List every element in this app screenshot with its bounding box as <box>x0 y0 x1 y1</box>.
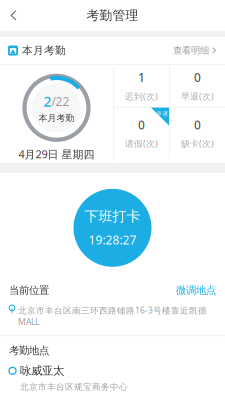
staticText: 考勤地点 <box>9 344 49 357</box>
staticText: 0 <box>194 117 201 133</box>
button[interactable]: 微调地点 <box>176 284 216 297</box>
staticText: 当前位置 <box>9 284 49 297</box>
staticText: 请假(次) <box>125 138 158 149</box>
button[interactable]: 0 <box>114 108 169 159</box>
staticText: 考勤管理 <box>86 8 138 23</box>
staticText: 0 <box>194 69 201 85</box>
staticText: 1 <box>138 69 145 85</box>
staticText: 19:28:27 <box>88 232 136 248</box>
staticText: 2 <box>43 92 51 111</box>
staticText: 北京市丰台区规宝商务中心 <box>20 382 128 392</box>
staticText: 缺卡(次) <box>181 138 214 149</box>
staticText: 微调地点 <box>176 284 216 297</box>
staticText: 早退(次) <box>181 90 214 102</box>
staticText: 查看明细 <box>173 45 209 56</box>
staticText: 申请 <box>156 110 168 117</box>
button[interactable]: 查看明细 <box>173 43 216 58</box>
staticText: /22 <box>51 93 69 109</box>
staticText: 0 <box>138 117 145 133</box>
button[interactable]: 0 <box>170 108 225 159</box>
staticText: 4月29日 星期四 <box>18 147 94 161</box>
staticText: 本月考勤 <box>22 44 66 57</box>
button[interactable]: 下班打卡 <box>0 173 225 276</box>
button[interactable]: 返回 <box>0 1 27 29</box>
staticText: 咏威亚太 <box>20 364 64 378</box>
staticText: 本月考勤 <box>38 113 74 123</box>
staticText: 下班打卡 <box>84 208 140 225</box>
button[interactable]: 咏威亚太 <box>9 357 216 392</box>
staticText: 迟到(次) <box>125 90 158 102</box>
button[interactable]: 0 <box>170 65 225 107</box>
button[interactable]: 1 <box>114 65 169 107</box>
staticText: 北京市丰台区南三环西路铺路16-3号楼靠近凯德MALL <box>18 305 207 327</box>
